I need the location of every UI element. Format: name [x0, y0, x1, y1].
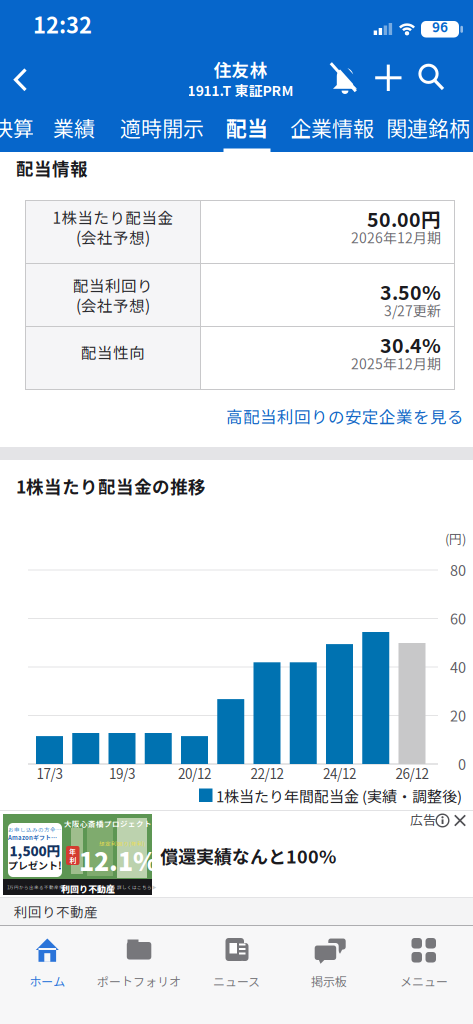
staticText: 償還実績なんと100% [160, 842, 336, 869]
staticText: ポートフォリオ [97, 972, 181, 990]
staticText: 1株当たり年間配当金 (実績・調整後) [216, 785, 462, 806]
button[interactable]: 業績 [0, 0, 42, 30]
staticText: 24/12 [323, 763, 356, 783]
button[interactable]: 企業情報 [0, 0, 84, 30]
staticText: Amazonギフトカード [8, 833, 62, 842]
staticText: 20 [450, 705, 466, 726]
staticText: 住友林 [213, 56, 267, 82]
staticText: (円) [445, 529, 466, 548]
staticText: 60 [450, 608, 466, 629]
button[interactable]: 掲示板 [282, 931, 376, 989]
staticText: 大阪心斎橋プロジェクトフェーズ1 [64, 818, 187, 829]
staticText: 適時開示 [120, 112, 204, 142]
button[interactable]: 高配当利回りの安定企業を見る [0, 0, 464, 24]
staticText: 3.50% [380, 277, 441, 306]
staticText: 50.00円 [367, 204, 441, 233]
button[interactable]: ポートフォリオ [92, 931, 186, 989]
staticText: プレゼント! [8, 858, 62, 872]
staticText: (会社予想) [76, 294, 150, 316]
staticText: 決算 [0, 112, 34, 142]
staticText: 20/12 [178, 763, 211, 783]
button[interactable]: 大阪心斎橋プロジェクトフェーズ1 [0, 814, 473, 897]
staticText: 2025年12月期 [351, 353, 441, 373]
staticText: 想定利回り(年利) [99, 839, 145, 847]
staticText: ニュース [213, 972, 260, 990]
staticText: 広告 [410, 810, 436, 829]
staticText: 96 [432, 17, 448, 36]
staticText: 1株当たり配当金の推移 [16, 473, 206, 498]
staticText: メニュー [400, 972, 448, 990]
staticText: 年 [69, 846, 76, 857]
staticText: 配当 [226, 112, 268, 142]
staticText: 1株当たり配当金 [52, 206, 173, 228]
staticText: 3/27更新 [384, 300, 441, 320]
staticText: 80 [450, 559, 466, 580]
staticText: 1911.T 東証PRM [187, 80, 293, 100]
staticText: お申し込みの方全員に [8, 825, 62, 833]
staticText: 企業情報 [290, 112, 374, 142]
staticText: 配当性向 [81, 341, 145, 363]
staticText: 詳しくはこちら▶ [117, 884, 157, 890]
button[interactable]: メニュー [377, 931, 471, 989]
staticText: 業績 [53, 112, 95, 142]
button[interactable]: ニュース [189, 931, 283, 989]
staticText: 12.1% [79, 842, 158, 878]
staticText: 0 [458, 753, 466, 774]
staticText: (会社予想) [76, 226, 150, 248]
staticText: 22/12 [250, 763, 283, 783]
staticText: 利 [69, 855, 76, 865]
button[interactable]: 検索 [0, 0, 40, 44]
staticText: 30.4% [380, 330, 441, 359]
staticText: 40 [450, 656, 466, 677]
staticText: 2026年12月期 [351, 227, 441, 247]
button[interactable]: 利回り不動産 [0, 0, 473, 27]
staticText: 配当利回り [73, 274, 153, 296]
staticText: 高配当利回りの安定企業を見る [226, 404, 464, 428]
staticText: 1万円から出来る不動産投資 [7, 884, 69, 890]
button[interactable]: ホーム [0, 931, 94, 989]
staticText: 配当情報 [16, 155, 88, 180]
button[interactable]: 適時開示 [0, 0, 84, 30]
staticText: ホーム [29, 972, 65, 990]
button[interactable]: 配当 [0, 0, 42, 30]
staticText: 掲示板 [311, 972, 347, 990]
staticText: 1,500円 [9, 840, 60, 860]
staticText: 19/3 [109, 763, 135, 783]
staticText: 関連銘柄 [386, 112, 470, 142]
button[interactable]: 決算 [0, 0, 42, 30]
staticText: 26/12 [395, 763, 428, 783]
button[interactable]: 関連銘柄 [0, 0, 84, 30]
staticText: 利回り不動産 [14, 901, 98, 921]
staticText: 利回り不動産 [61, 882, 115, 895]
staticText: 17/3 [36, 763, 62, 783]
button[interactable]: 通知オフ [0, 0, 44, 44]
button[interactable]: 追加 [0, 0, 40, 44]
button[interactable]: 戻る [0, 0, 40, 44]
staticText: 12:32 [33, 8, 92, 40]
